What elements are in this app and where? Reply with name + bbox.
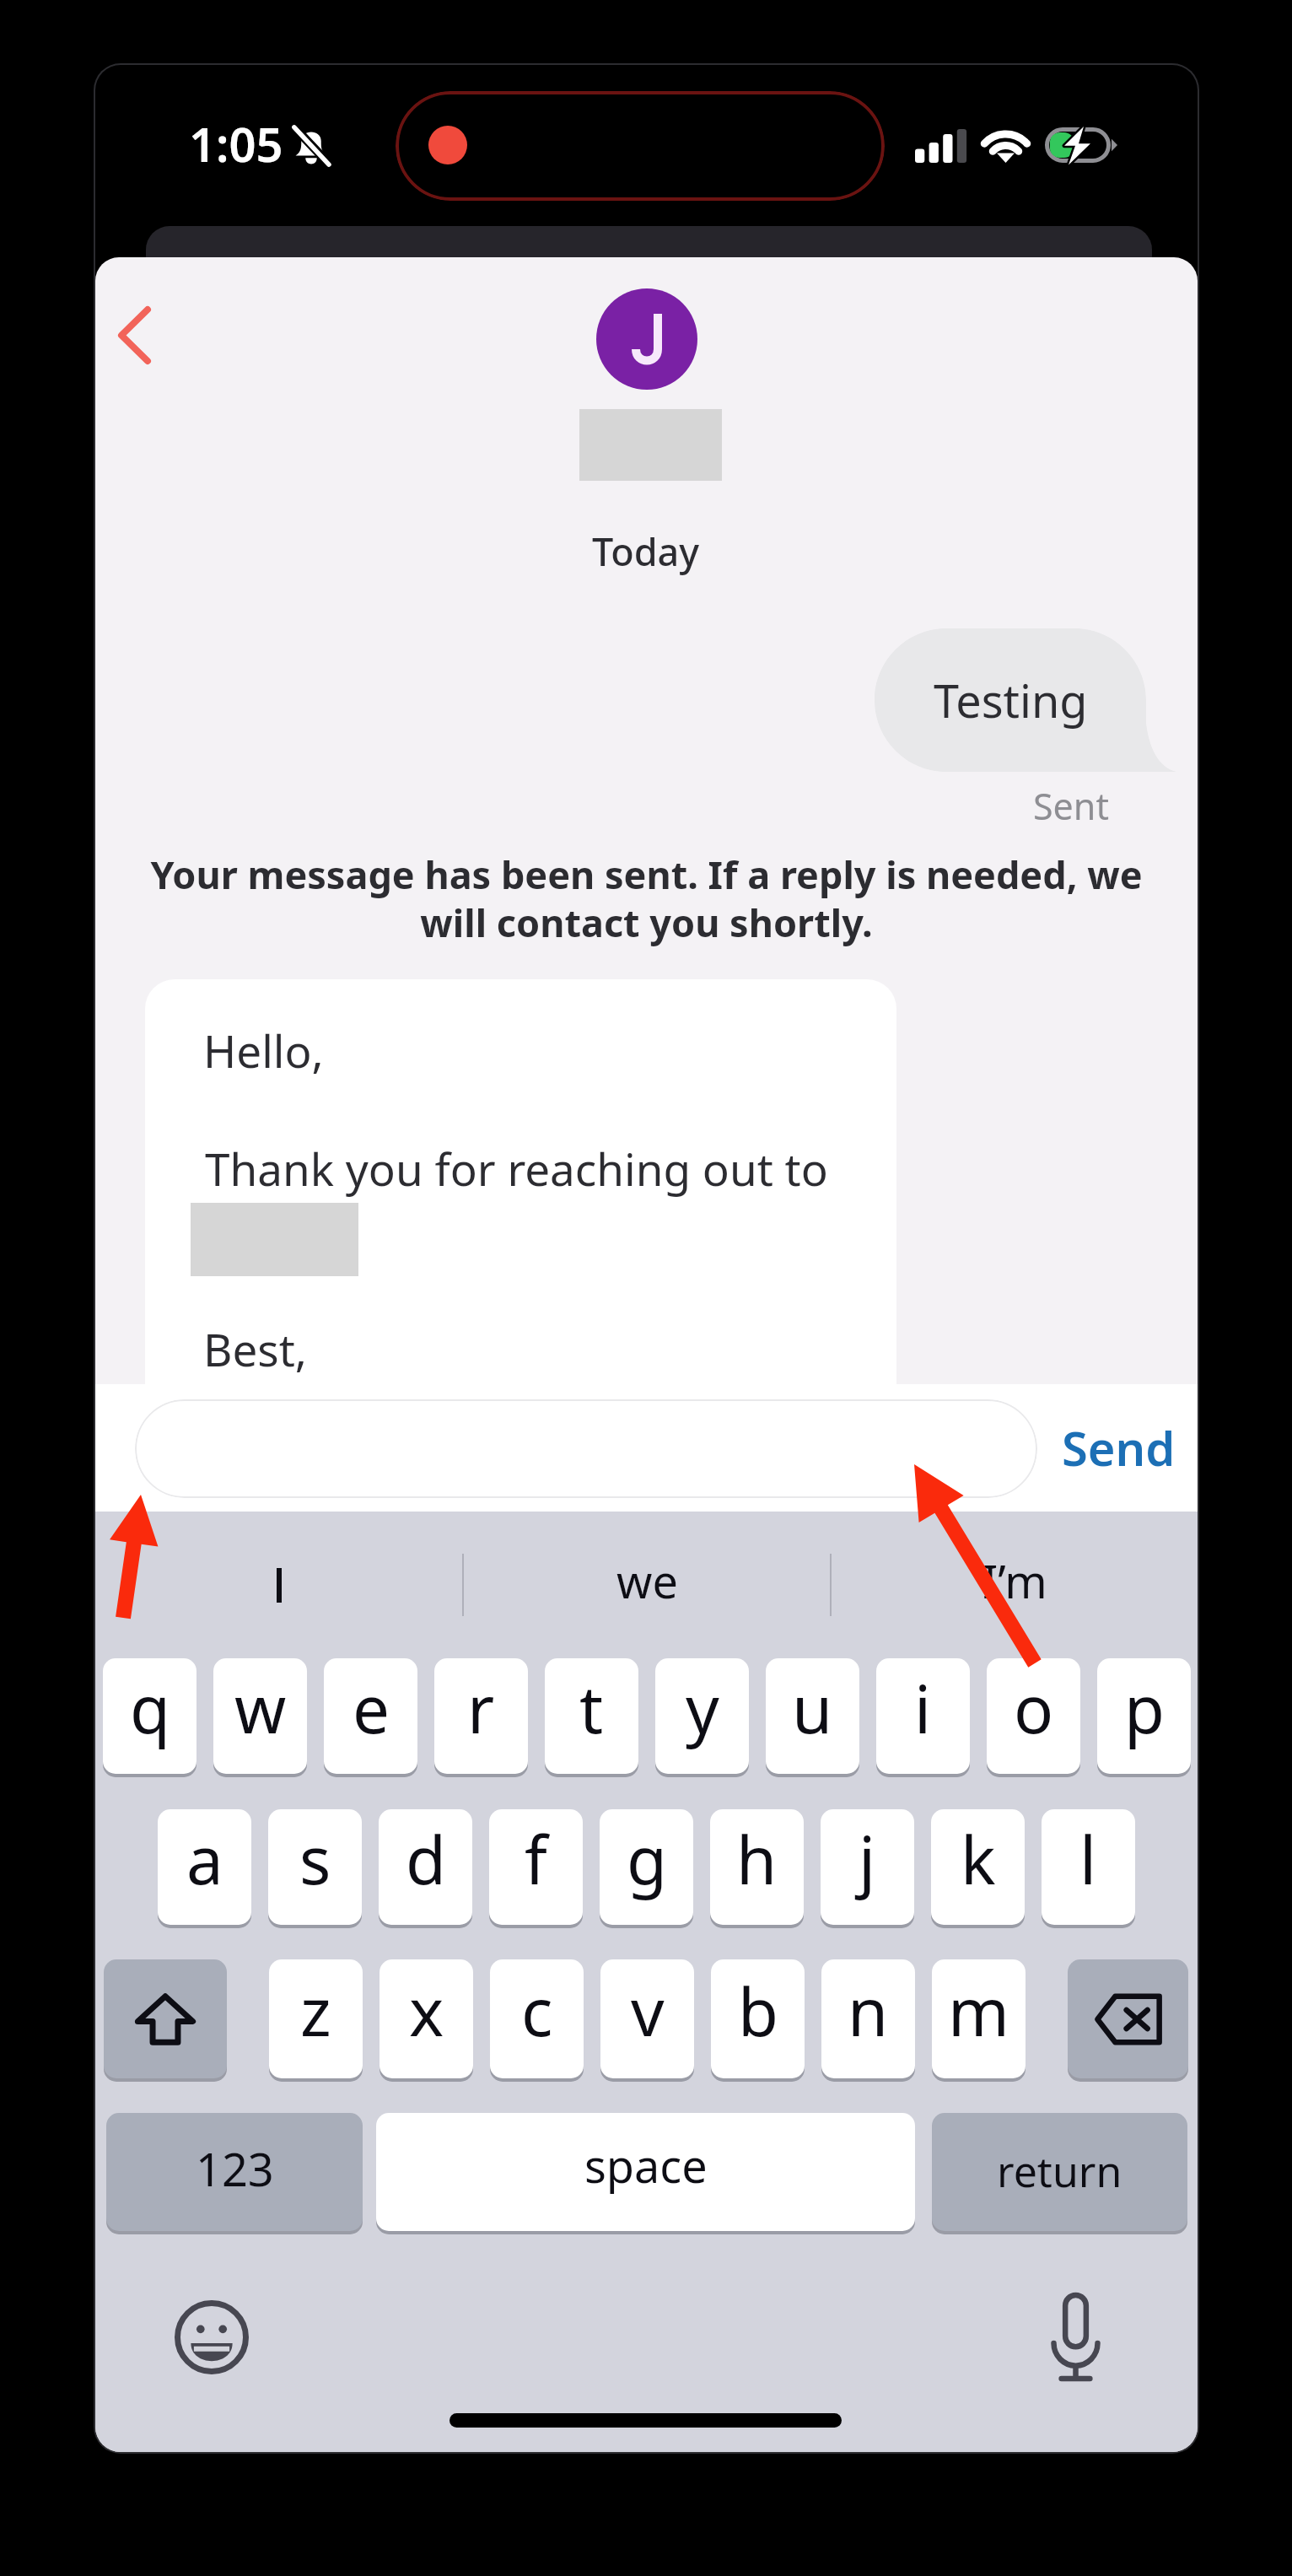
staticText: j: [859, 1814, 876, 1904]
button[interactable]: b: [711, 1959, 805, 2078]
staticText: Send: [1062, 1415, 1176, 1479]
staticText: p: [1124, 1663, 1165, 1753]
button[interactable]: s: [268, 1809, 362, 1925]
staticText: k: [961, 1814, 996, 1904]
button[interactable]: Shift: [104, 1959, 227, 2078]
staticText: 123: [196, 2137, 274, 2200]
button[interactable]: c: [490, 1959, 584, 2078]
button[interactable]: v: [600, 1959, 694, 2078]
button[interactable]: m: [932, 1959, 1026, 2078]
staticText: I’m: [982, 1549, 1047, 1612]
button[interactable]: l: [1042, 1809, 1135, 1925]
button[interactable]: Emoji keyboard: [175, 2300, 249, 2374]
staticText: s: [299, 1814, 331, 1904]
staticText: Sent: [1033, 781, 1109, 831]
button[interactable]: r: [434, 1658, 528, 1774]
button[interactable]: p: [1097, 1658, 1191, 1774]
staticText: v: [631, 1966, 665, 2056]
staticText: x: [409, 1966, 444, 2056]
staticText: f: [525, 1814, 547, 1904]
staticText: 1:05: [189, 111, 283, 175]
staticText: h: [736, 1814, 778, 1904]
button[interactable]: o: [987, 1658, 1080, 1774]
staticText: Your message has been sent. If a reply i…: [119, 849, 1174, 948]
button[interactable]: h: [710, 1809, 804, 1925]
staticText: space: [584, 2134, 708, 2196]
staticText: w: [234, 1663, 287, 1753]
staticText: d: [406, 1814, 446, 1904]
staticText: we: [616, 1549, 678, 1612]
button[interactable]: e: [324, 1658, 417, 1774]
button[interactable]: Backspace: [1068, 1959, 1188, 2078]
staticText: a: [186, 1814, 223, 1904]
button[interactable]: y: [655, 1658, 749, 1774]
staticText: e: [353, 1663, 390, 1753]
staticText: z: [300, 1966, 331, 2056]
staticText: b: [738, 1966, 778, 2056]
staticText: y: [686, 1663, 719, 1753]
staticText: Best,: [203, 1318, 308, 1379]
staticText: t: [579, 1663, 604, 1753]
button[interactable]: we: [464, 1512, 830, 1658]
button[interactable]: g: [600, 1809, 693, 1925]
button[interactable]: Contact name: [579, 409, 722, 481]
staticText: Hello,: [203, 1020, 324, 1081]
button[interactable]: Testing: [875, 628, 1176, 772]
button[interactable]: n: [821, 1959, 915, 2078]
staticText: u: [792, 1663, 833, 1753]
staticText: Testing: [934, 669, 1088, 731]
staticText: c: [521, 1966, 553, 2056]
staticText: Today: [592, 525, 700, 577]
button[interactable]: z: [269, 1959, 363, 2078]
button[interactable]: I: [95, 1512, 462, 1658]
staticText: return: [997, 2142, 1122, 2200]
staticText: l: [1079, 1814, 1097, 1904]
button[interactable]: Message input: [135, 1399, 1037, 1498]
staticText: g: [627, 1814, 667, 1904]
staticText: o: [1014, 1663, 1054, 1753]
button[interactable]: a: [158, 1809, 251, 1925]
button[interactable]: j: [821, 1809, 914, 1925]
button[interactable]: Send: [1051, 1396, 1186, 1501]
button[interactable]: space: [376, 2113, 915, 2231]
button[interactable]: u: [766, 1658, 859, 1774]
staticText: r: [467, 1663, 495, 1753]
button[interactable]: return: [932, 2113, 1187, 2231]
button[interactable]: 123: [106, 2113, 363, 2231]
button[interactable]: w: [213, 1658, 307, 1774]
button[interactable]: Dictation: [1048, 2295, 1103, 2381]
button[interactable]: i: [876, 1658, 970, 1774]
button[interactable]: k: [931, 1809, 1025, 1925]
staticText: m: [948, 1966, 1009, 2056]
staticText: n: [848, 1966, 889, 2056]
button[interactable]: x: [380, 1959, 473, 2078]
button[interactable]: f: [489, 1809, 583, 1925]
staticText: q: [130, 1663, 170, 1753]
button[interactable]: Back: [95, 281, 186, 390]
button[interactable]: t: [545, 1658, 638, 1774]
button[interactable]: Contact avatar: [596, 288, 697, 390]
button[interactable]: q: [103, 1658, 196, 1774]
button[interactable]: I’m: [832, 1512, 1198, 1658]
button[interactable]: d: [379, 1809, 472, 1925]
staticText: i: [914, 1663, 932, 1753]
staticText: Thank you for reaching out to: [205, 1138, 828, 1199]
